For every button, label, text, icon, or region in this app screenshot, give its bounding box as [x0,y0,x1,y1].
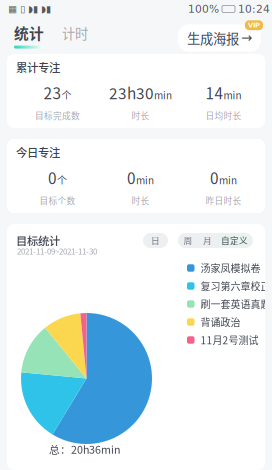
staticText: 时长 [131,109,149,122]
staticText: 累计专注 [16,59,60,75]
staticText: 23 [43,81,61,104]
staticText: 目标统计 [16,232,60,249]
staticText: 个 [57,173,67,187]
staticText: 汤家凤模拟卷 [200,261,260,275]
staticText: 总：20h36min [49,441,121,457]
staticText: 月 [203,234,212,247]
staticText: 目标个数 [39,194,75,207]
staticText: 复习第六章校正 [200,279,270,293]
staticText: 目标完成数 [35,109,80,122]
button[interactable]: 生成海报 [178,22,272,52]
staticText: 周 [183,234,192,247]
button[interactable]: 月 [198,233,217,248]
staticText: ▦ ▯ ◗▮ ◗▮ [8,4,51,14]
staticText: → [241,30,252,46]
staticText: 0 [127,166,136,189]
button[interactable]: 统计 [0,22,44,48]
staticText: 刷一套英语真题 [200,297,270,311]
staticText: 背诵政治 [200,315,240,329]
staticText: 个 [61,88,71,102]
button[interactable]: 计时 [44,22,88,43]
staticText: 14 [205,81,223,104]
staticText: min [136,173,154,187]
staticText: VIP [248,21,260,29]
staticText: 昨日时长 [205,194,241,207]
staticText: 100% [188,3,219,15]
staticText: 2021-11-09~2021-11-30 [17,245,97,257]
staticText: 统计 [14,22,44,43]
staticText: 生成海报 [187,28,239,48]
staticText: 计时 [62,23,88,43]
button[interactable]: 周 [178,233,198,248]
staticText: 日均时长 [205,109,241,122]
staticText: 0 [48,166,57,189]
staticText: 时长 [131,194,149,207]
button[interactable]: 自定义 [217,234,253,247]
staticText: 0 [210,166,219,189]
staticText: min [219,173,237,187]
staticText: 10:24 [238,3,270,15]
staticText: 日 [151,234,160,247]
staticText: 自定义 [221,234,248,247]
staticText: 23h30 [109,81,154,104]
staticText: min [154,88,172,102]
staticText: min [223,88,241,102]
staticText: 11月2号测试 [200,333,258,347]
staticText: 今日专注 [16,144,60,160]
button[interactable]: 日 [143,233,168,248]
